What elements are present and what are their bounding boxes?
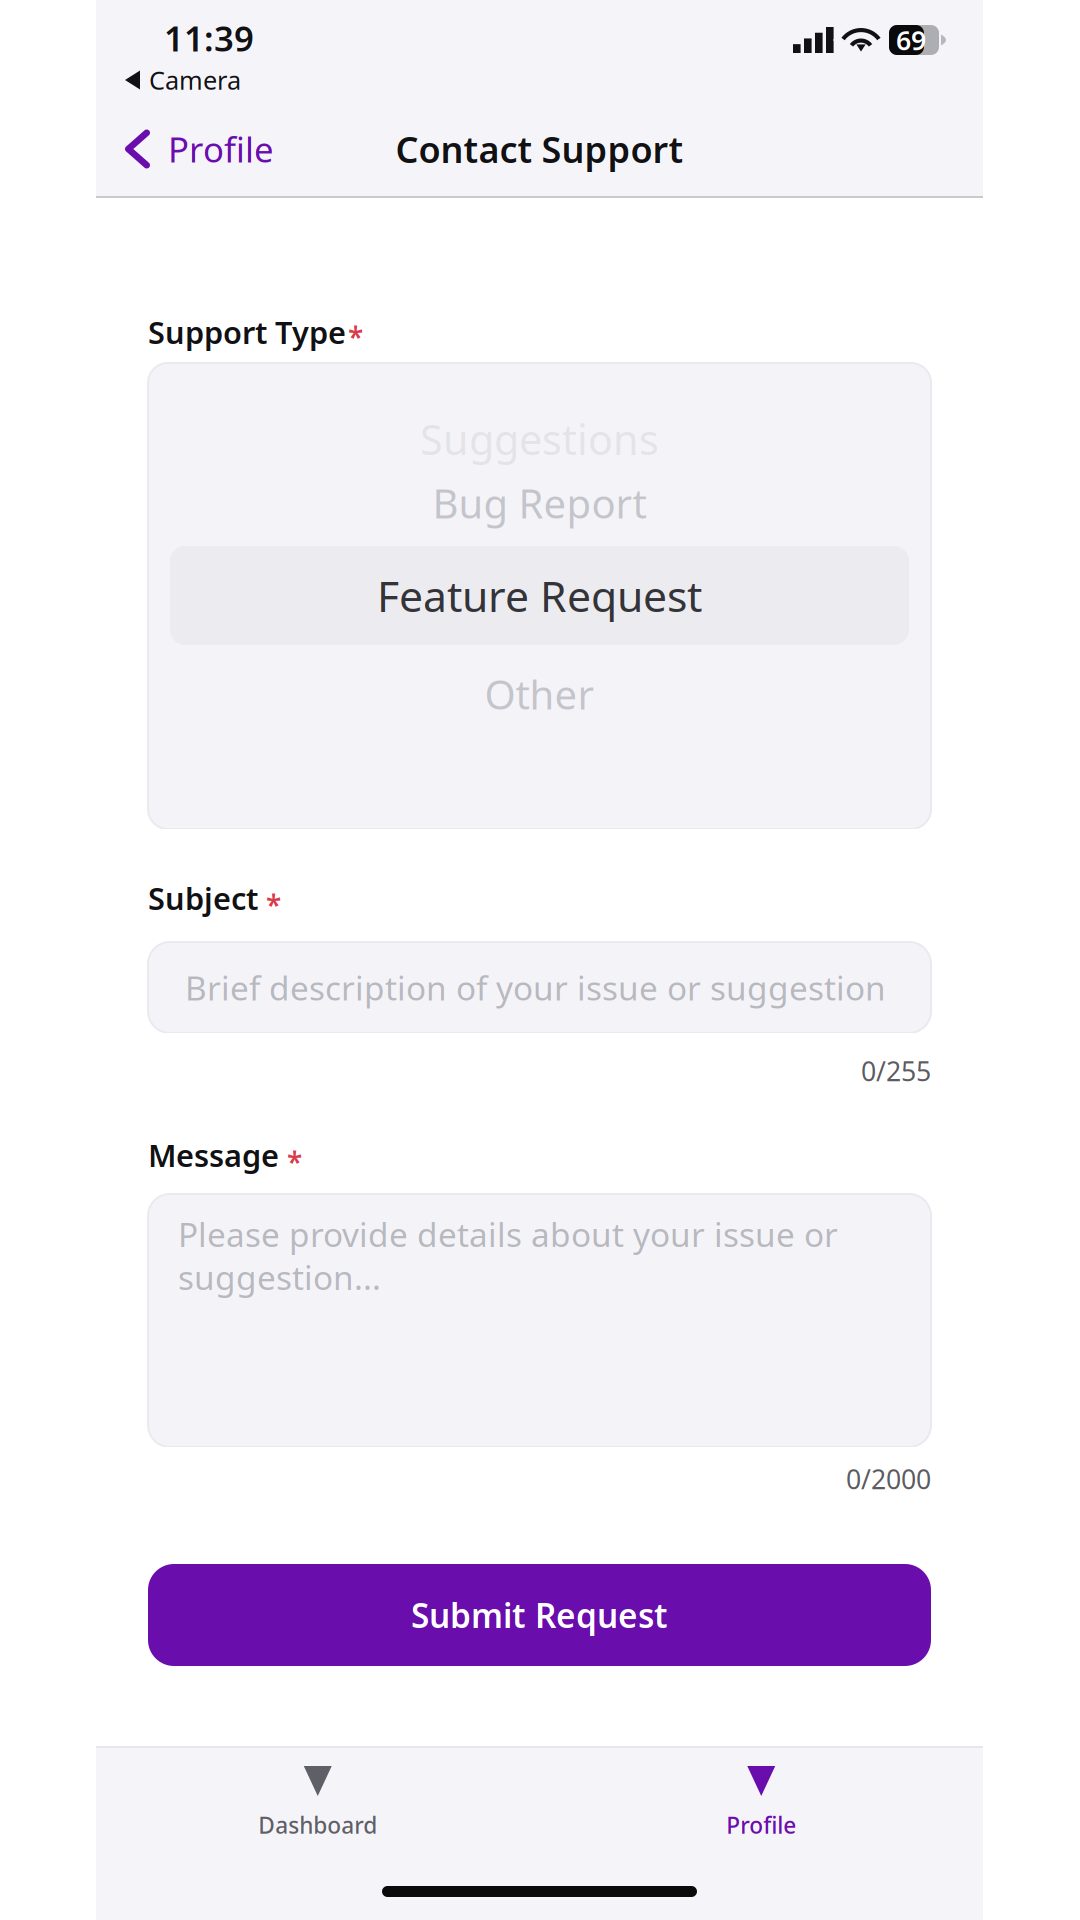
staticText: Bug Report	[432, 476, 646, 529]
staticText: suggestion...	[178, 1255, 381, 1299]
staticText: 11:39	[164, 15, 254, 61]
button[interactable]: Submit Request	[148, 1564, 931, 1666]
staticText: Support Type	[148, 312, 346, 352]
staticText: *	[287, 1143, 302, 1180]
staticText: Suggestions	[420, 412, 659, 466]
button[interactable]: Profile	[539, 1748, 983, 1860]
staticText: Subject	[148, 878, 258, 918]
staticText: Dashboard	[258, 1810, 377, 1840]
staticText: Camera	[149, 63, 241, 97]
staticText: Contact Support	[395, 125, 683, 173]
staticText: Submit Request	[411, 1593, 668, 1637]
staticText: *	[266, 886, 281, 923]
staticText: Profile	[168, 126, 274, 172]
staticText: Feature Request	[377, 567, 702, 624]
staticText: Profile	[726, 1810, 796, 1840]
button[interactable]: Dashboard	[96, 1748, 539, 1860]
staticText: Other	[484, 667, 594, 720]
staticText: Brief description of your issue or sugge…	[185, 965, 886, 1010]
button[interactable]: Profile	[96, 102, 298, 196]
staticText: 69	[896, 22, 926, 58]
staticText: *	[348, 318, 363, 355]
staticText: Message	[148, 1135, 279, 1175]
staticText: 0/2000	[846, 1461, 931, 1497]
staticText: 0/255	[861, 1053, 931, 1089]
staticText: Please provide details about your issue …	[178, 1212, 838, 1256]
